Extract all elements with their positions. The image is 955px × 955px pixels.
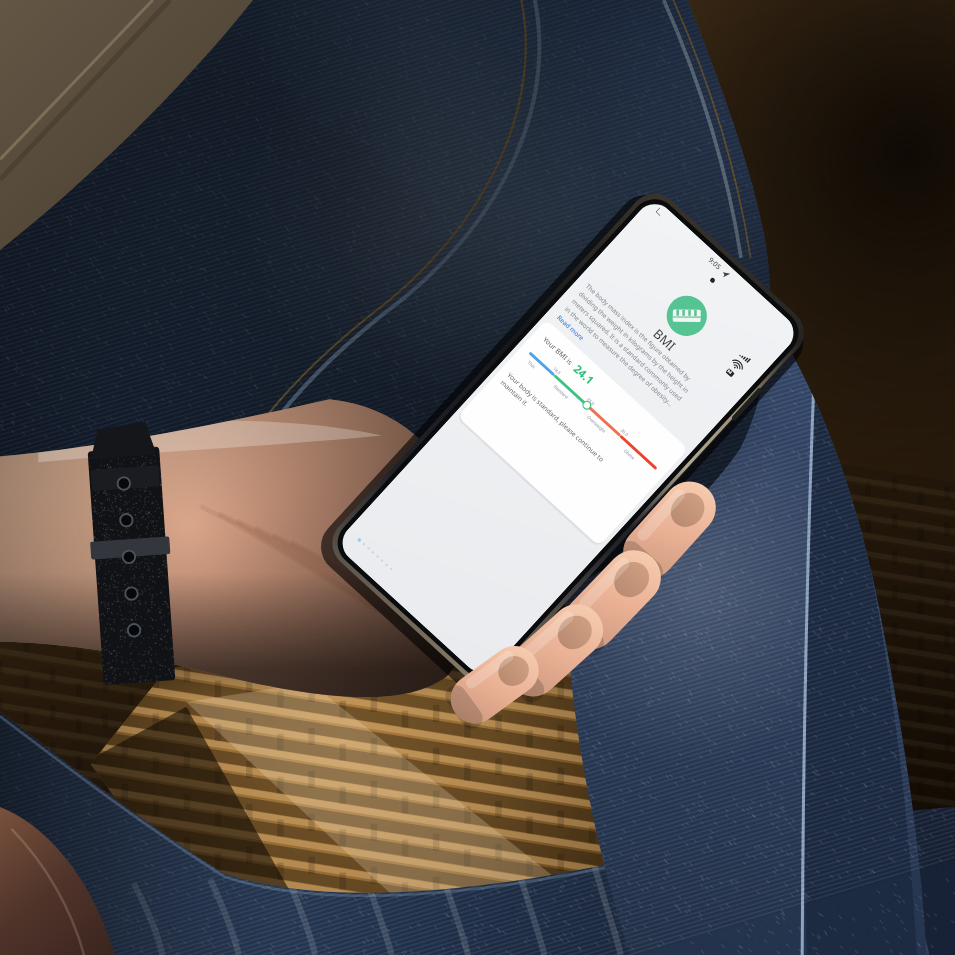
button[interactable]: Hand holding a phone showing the BMI scr… (0, 0, 955, 955)
